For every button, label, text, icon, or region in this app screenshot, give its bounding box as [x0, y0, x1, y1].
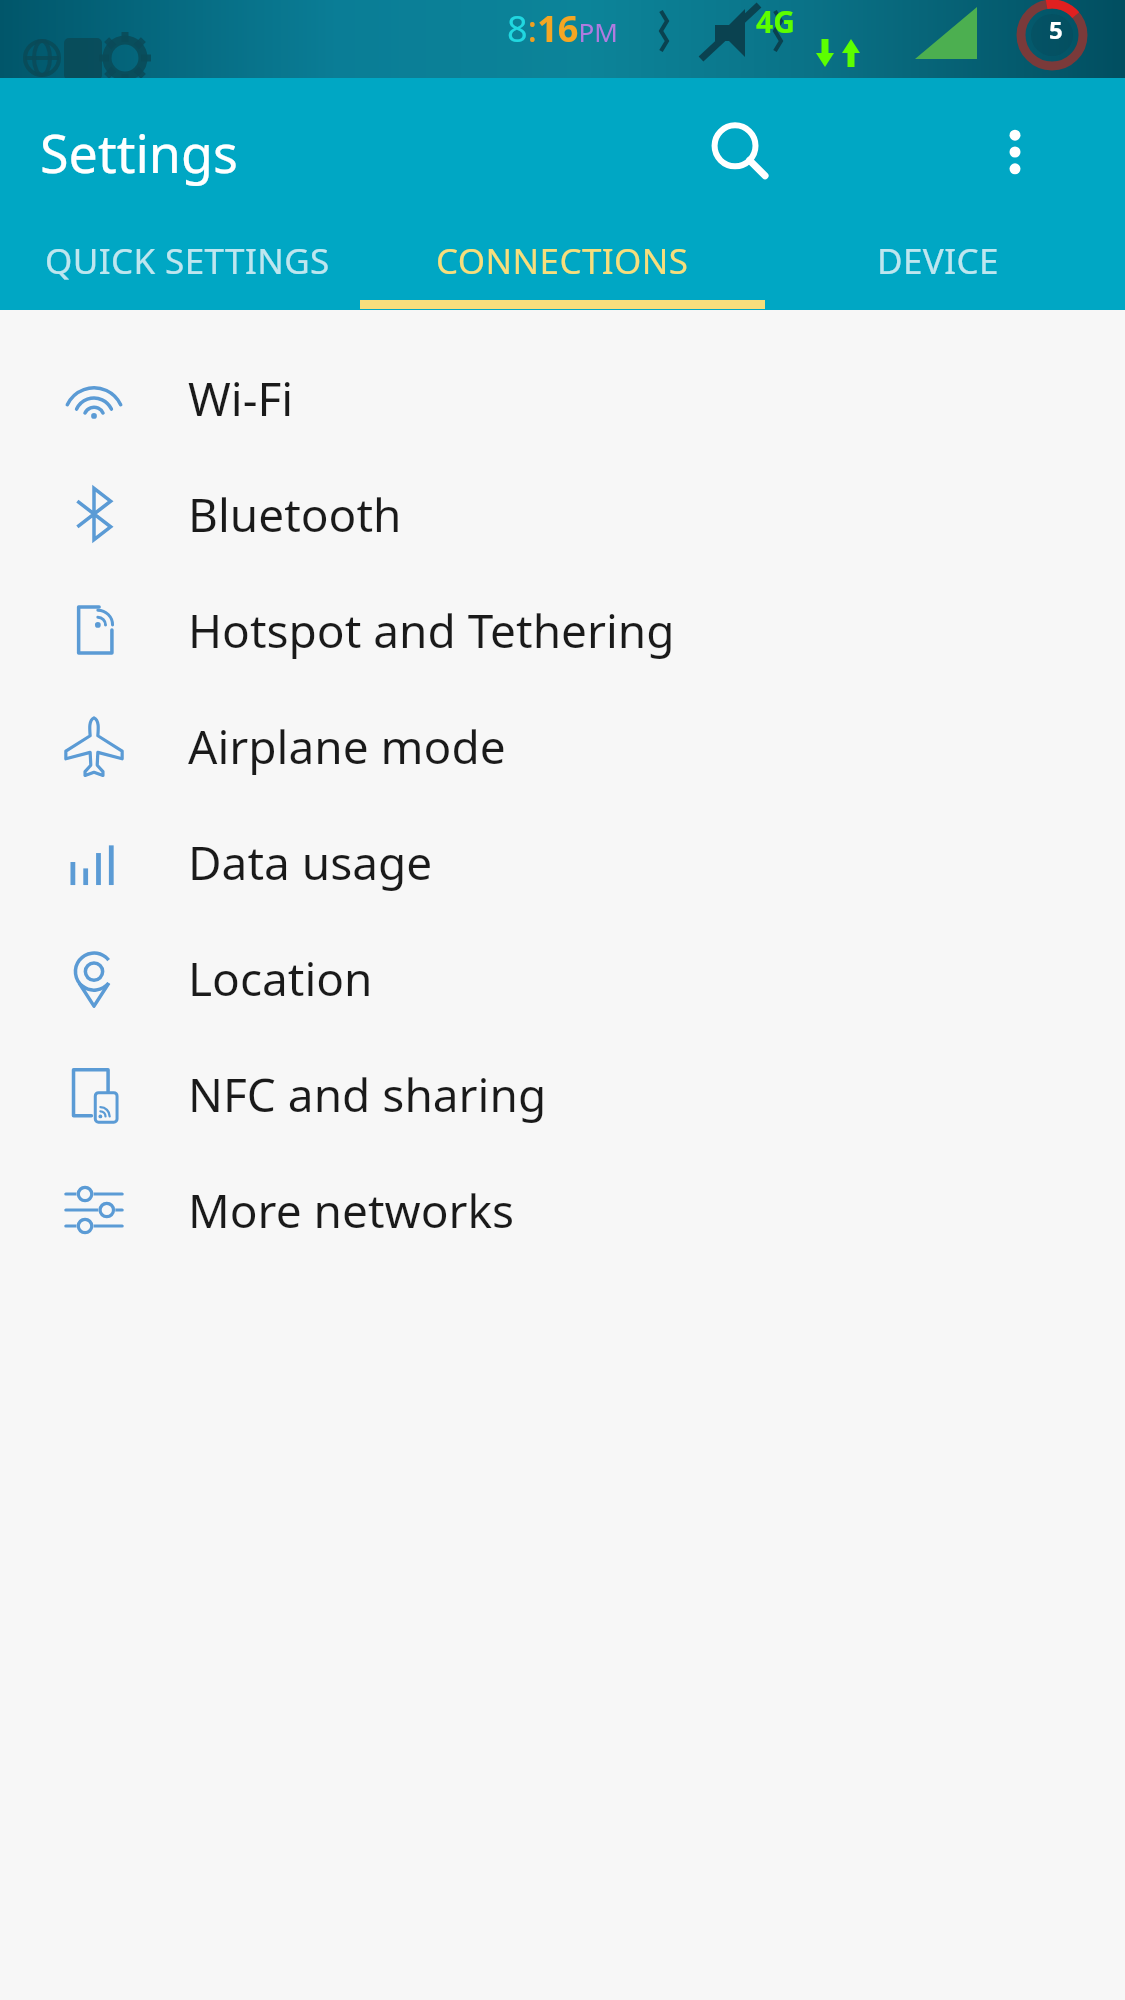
staticText: Bluetooth	[188, 483, 402, 546]
button[interactable]: Location	[0, 920, 1125, 1036]
button[interactable]: More options	[965, 102, 1065, 202]
button[interactable]: Search	[685, 97, 795, 207]
staticText: 4G	[756, 1, 795, 42]
button[interactable]: Hotspot and Tethering	[0, 572, 1125, 688]
button[interactable]: Bluetooth	[0, 456, 1125, 572]
button[interactable]: CONNECTIONS	[375, 226, 750, 310]
button[interactable]: More networks	[0, 1152, 1125, 1268]
staticText: More networks	[188, 1179, 515, 1242]
staticText: 5	[1049, 13, 1063, 46]
staticText: Hotspot and Tethering	[188, 599, 675, 662]
button[interactable]: DEVICE	[750, 226, 1125, 310]
button[interactable]: Airplane mode	[0, 688, 1125, 804]
staticText: Wi-Fi	[188, 367, 294, 430]
staticText: Data usage	[188, 831, 433, 894]
staticText: NFC and sharing	[188, 1063, 547, 1126]
staticText: Airplane mode	[188, 715, 506, 778]
button[interactable]: NFC and sharing	[0, 1036, 1125, 1152]
button[interactable]: Data usage	[0, 804, 1125, 920]
button[interactable]: Wi-Fi	[0, 340, 1125, 456]
staticText: Settings	[40, 117, 238, 188]
staticText: 8:16PM	[507, 4, 618, 53]
staticText: Location	[188, 947, 373, 1010]
staticText: QUICK SETTINGS	[45, 237, 330, 285]
staticText: CONNECTIONS	[436, 237, 689, 285]
button[interactable]: QUICK SETTINGS	[0, 226, 375, 310]
staticText: DEVICE	[877, 237, 999, 285]
